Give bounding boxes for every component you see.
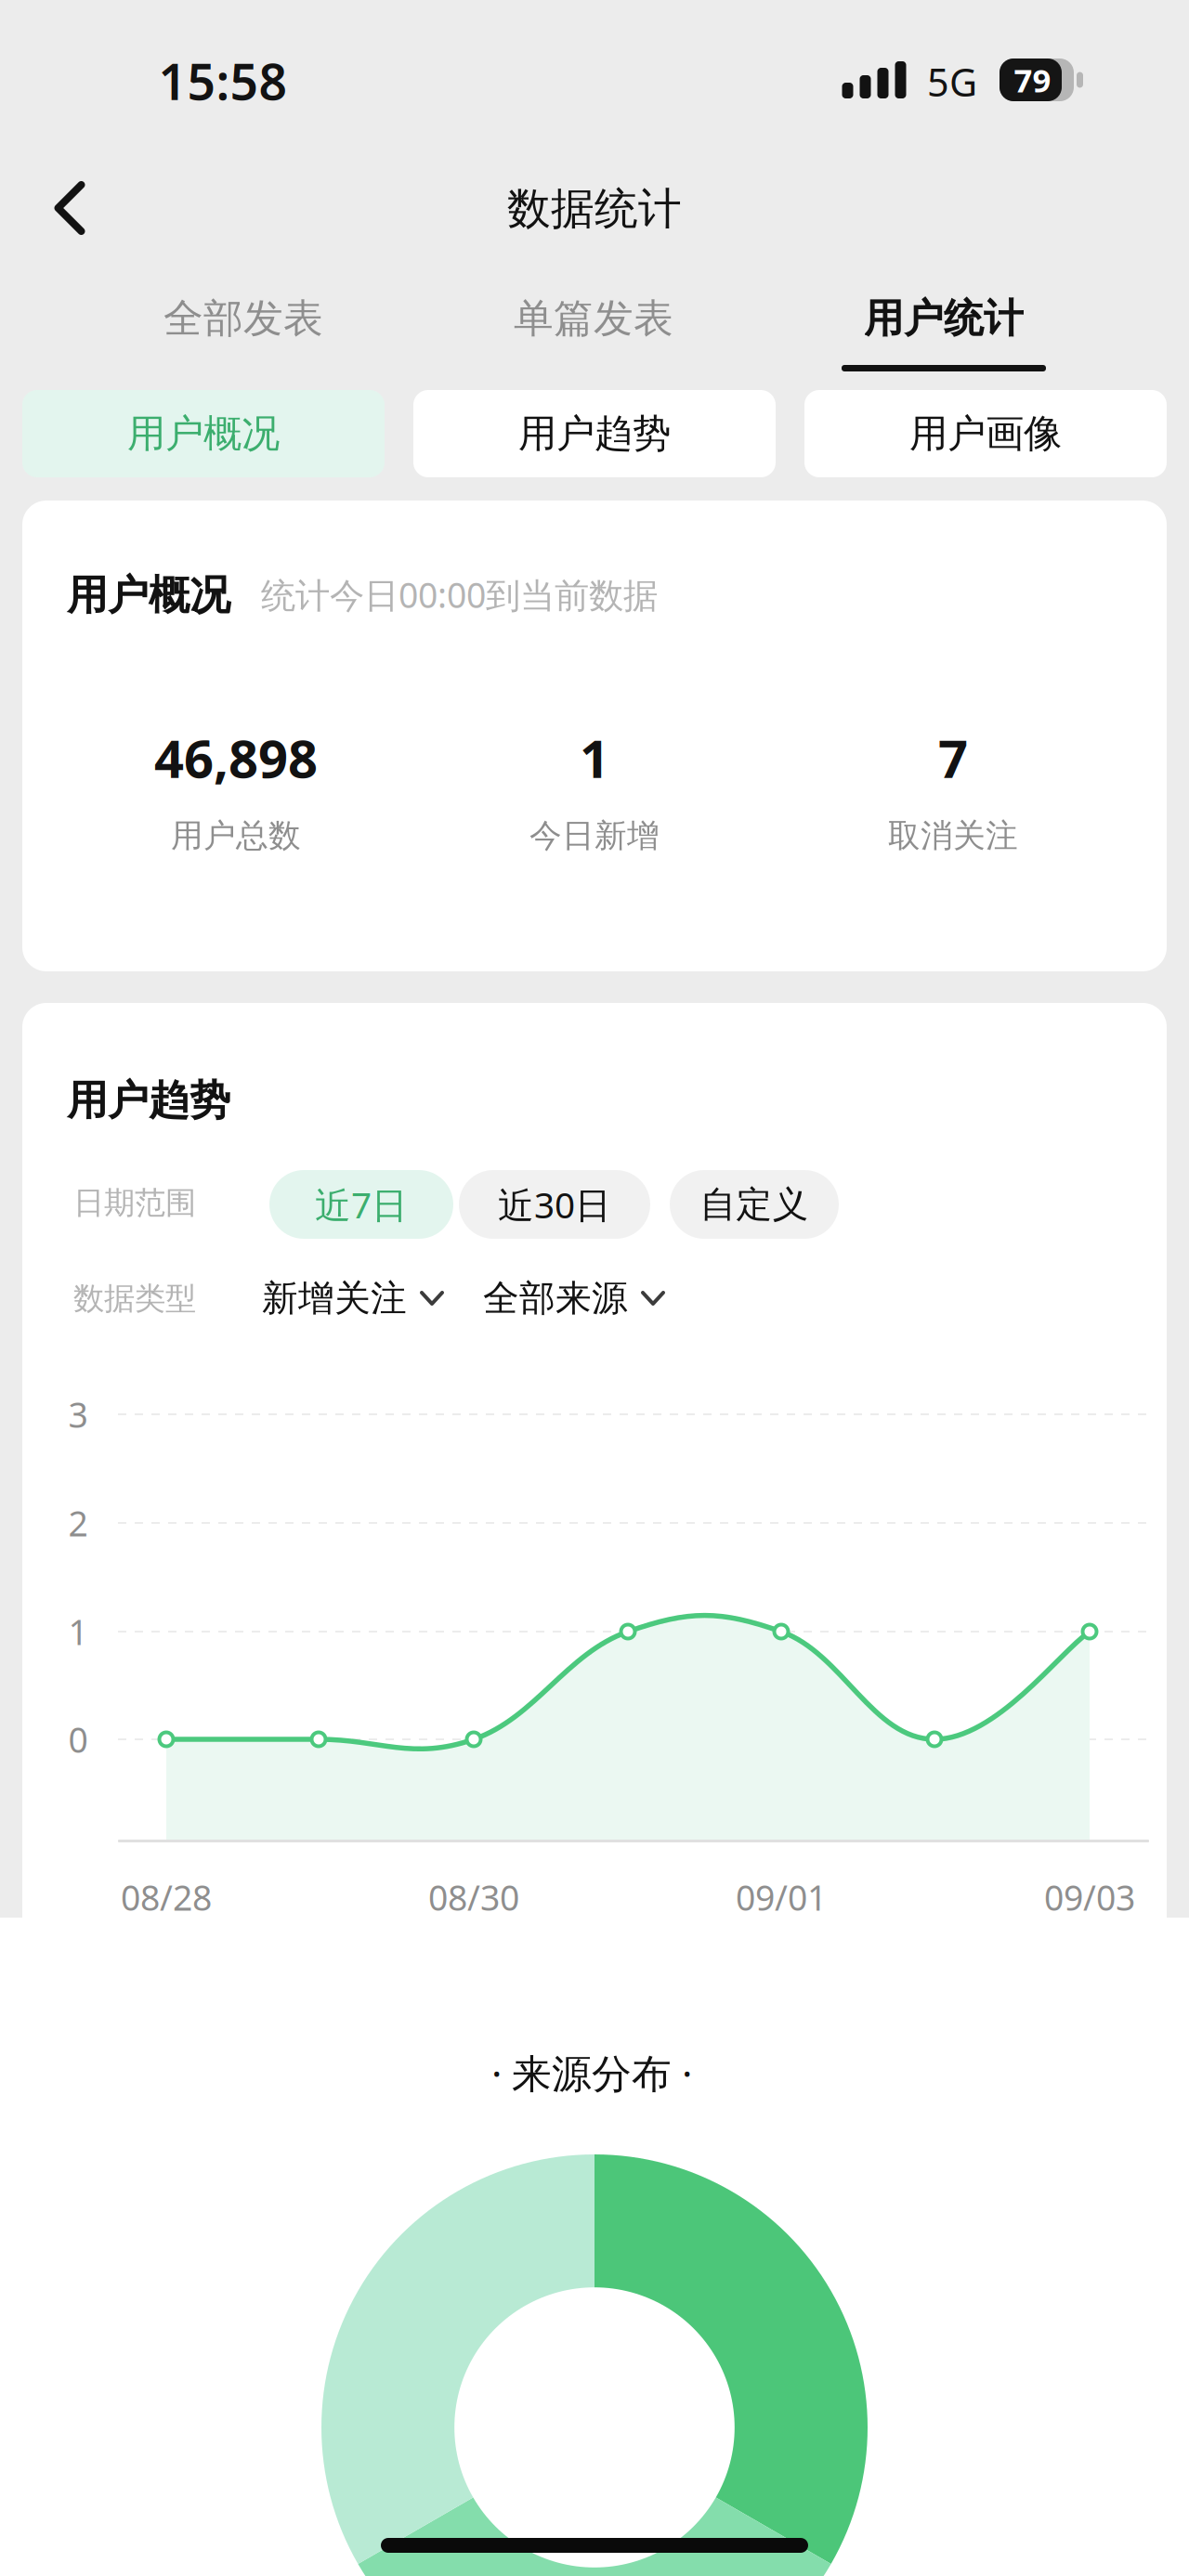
staticText: 3 bbox=[68, 1391, 88, 1437]
staticText: 1 bbox=[580, 723, 609, 792]
staticText: 日期范围 bbox=[73, 1184, 196, 1222]
staticText: 15:58 bbox=[158, 48, 287, 114]
staticText: 7 bbox=[938, 723, 968, 792]
staticText: 46,898 bbox=[154, 723, 318, 792]
staticText: 用户概况 bbox=[67, 570, 230, 620]
button[interactable]: 单篇发表 bbox=[426, 262, 761, 383]
staticText: 79 bbox=[1014, 59, 1051, 101]
staticText: 0 bbox=[68, 1716, 88, 1762]
staticText: 用户趋势 bbox=[518, 410, 671, 457]
staticText: 近7日 bbox=[315, 1181, 408, 1228]
staticText: 全部发表 bbox=[163, 294, 323, 343]
staticText: 全部来源 bbox=[483, 1276, 628, 1320]
staticText: 用户画像 bbox=[909, 410, 1062, 457]
staticText: 取消关注 bbox=[888, 816, 1018, 856]
staticText: 今日新增 bbox=[529, 816, 660, 856]
button[interactable]: 全部发表 bbox=[76, 262, 411, 383]
staticText: 09/01 bbox=[736, 1874, 827, 1920]
staticText: 数据类型 bbox=[73, 1280, 196, 1318]
staticText: 用户统计 bbox=[864, 294, 1024, 343]
staticText: 数据统计 bbox=[507, 182, 682, 235]
staticText: 5G bbox=[927, 56, 977, 107]
staticText: 2 bbox=[68, 1500, 88, 1546]
staticText: 单篇发表 bbox=[514, 294, 673, 343]
button[interactable]: 用户趋势 bbox=[413, 390, 776, 477]
staticText: 08/28 bbox=[121, 1874, 212, 1920]
staticText: 用户趋势 bbox=[67, 1075, 230, 1125]
staticText: 近30日 bbox=[498, 1181, 611, 1228]
staticText: 用户总数 bbox=[171, 816, 301, 856]
button[interactable]: 自定义 bbox=[670, 1170, 839, 1239]
button[interactable]: 用户画像 bbox=[804, 390, 1167, 477]
staticText: 用户概况 bbox=[127, 410, 280, 457]
staticText: 1 bbox=[68, 1609, 88, 1655]
button[interactable]: 返回 bbox=[18, 156, 122, 260]
button[interactable]: 近7日 bbox=[269, 1170, 453, 1239]
button[interactable]: 新增关注 bbox=[262, 1270, 442, 1326]
button[interactable]: 全部来源 bbox=[483, 1270, 663, 1326]
staticText: 09/03 bbox=[1044, 1874, 1135, 1920]
button[interactable]: 用户统计 bbox=[777, 262, 1111, 383]
staticText: · 来源分布 · bbox=[491, 2046, 692, 2099]
staticText: 自定义 bbox=[700, 1182, 809, 1227]
staticText: 统计今日00:00到当前数据 bbox=[261, 572, 658, 618]
button[interactable]: 近30日 bbox=[459, 1170, 650, 1239]
button[interactable]: 用户概况 bbox=[22, 390, 385, 477]
staticText: 08/30 bbox=[428, 1874, 519, 1920]
staticText: 新增关注 bbox=[262, 1276, 407, 1320]
